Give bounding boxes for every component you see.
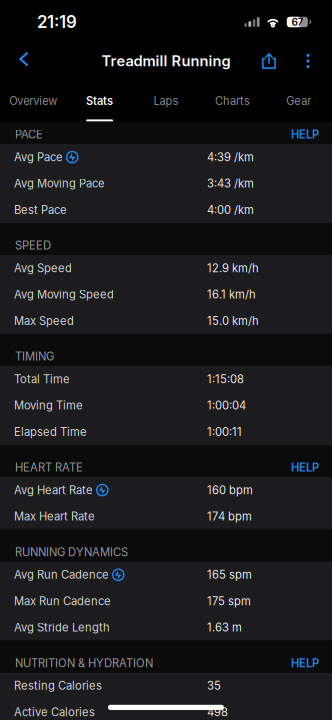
button[interactable]: Avg Pace [0,144,332,170]
staticText: 21:19 [37,12,77,32]
button[interactable]: Avg Speed [0,255,332,281]
staticText: Best Pace [14,203,67,217]
button[interactable]: Back [5,44,43,78]
button[interactable]: Max Heart Rate [0,503,332,530]
staticText: SPEED [15,239,51,252]
button[interactable]: Total Time [0,366,332,392]
button[interactable]: Laps [133,78,199,122]
staticText: PACE [15,128,43,141]
button[interactable]: Avg Moving Pace [0,170,332,197]
staticText: 1:15:08 [207,372,244,386]
button[interactable]: Avg Stride Length [0,614,332,641]
staticText: Treadmill Running [101,52,230,70]
staticText: Elapsed Time [14,425,87,439]
staticText: Max Run Cadence [14,594,111,608]
staticText: Max Heart Rate [14,510,95,523]
staticText: Charts [215,94,250,108]
staticText: 67 [291,16,303,28]
staticText: HELP [291,656,319,670]
button[interactable]: Resting Calories [0,673,332,699]
button[interactable]: Avg Heart Rate [0,477,332,503]
button[interactable]: Best Pace [0,197,332,223]
button[interactable]: Elapsed Time [0,419,332,445]
staticText: 498 [207,705,228,719]
staticText: 15.0 km/h [207,314,259,328]
staticText: Resting Calories [14,679,102,693]
button[interactable]: Max Speed [0,308,332,334]
button[interactable]: Stats [66,78,133,122]
button[interactable]: Max Run Cadence [0,588,332,614]
staticText: 160 bpm [207,483,253,497]
staticText: Avg Pace [14,150,63,164]
staticText: Overview [9,94,57,108]
button[interactable]: Avg Run Cadence [0,562,332,588]
staticText: Gear [286,94,311,108]
staticText: Avg Moving Pace [14,177,105,190]
staticText: 12.9 km/h [207,261,259,275]
staticText: Avg Heart Rate [14,483,93,497]
staticText: HELP [291,128,319,141]
button[interactable]: Charts [199,78,266,122]
staticText: 35 [207,679,221,693]
staticText: 1:00:11 [207,425,242,439]
staticText: Active Calories [14,705,95,719]
button[interactable]: More options [297,44,319,78]
staticText: 1.63 m [207,621,242,634]
button[interactable]: Active Calories [0,699,332,720]
staticText: 1:00:04 [207,399,246,412]
staticText: Avg Stride Length [14,621,110,634]
staticText: Moving Time [14,399,83,412]
staticText: Avg Moving Speed [14,288,114,301]
staticText: 175 spm [207,594,251,608]
staticText: HELP [291,461,319,474]
staticText: Avg Run Cadence [14,568,109,582]
staticText: Laps [153,94,178,108]
staticText: 3:43 /km [207,177,254,190]
staticText: 4:39 /km [207,150,254,164]
button[interactable]: Share [254,44,284,78]
button[interactable]: HELP [291,656,319,670]
button[interactable]: HELP [291,461,319,474]
button[interactable]: HELP [291,128,319,141]
staticText: HEART RATE [15,461,83,474]
staticText: Max Speed [14,314,74,328]
staticText: 4:00 /km [207,203,254,217]
button[interactable]: Overview [0,78,66,122]
button[interactable]: Avg Moving Speed [0,281,332,308]
staticText: Stats [86,94,113,108]
staticText: 165 spm [207,568,252,582]
staticText: Avg Speed [14,261,72,275]
staticText: 16.1 km/h [207,288,256,301]
staticText: RUNNING DYNAMICS [15,545,128,559]
staticText: 174 bpm [207,510,252,523]
staticText: TIMING [15,350,54,363]
button[interactable]: Moving Time [0,392,332,419]
staticText: NUTRITION & HYDRATION [15,656,153,670]
button[interactable]: Gear [266,78,332,122]
staticText: Total Time [14,372,70,386]
